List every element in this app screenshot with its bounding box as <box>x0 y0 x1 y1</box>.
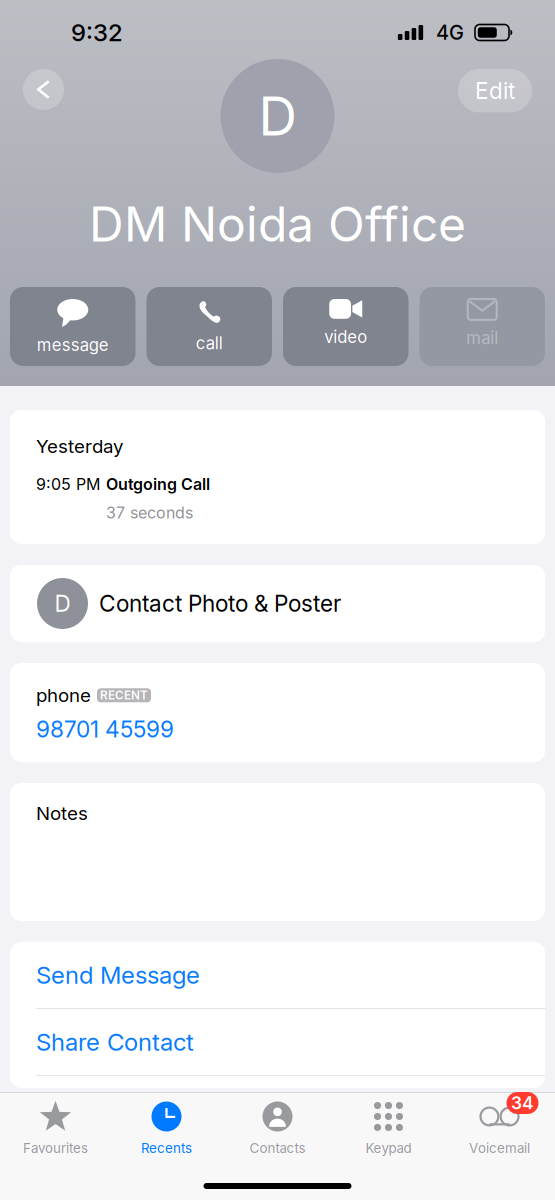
button[interactable]: Keypad <box>333 1101 444 1156</box>
staticText: Outgoing Call <box>106 475 210 494</box>
staticText: Favourites <box>23 1140 88 1156</box>
staticText: message <box>37 335 109 355</box>
button[interactable]: mail <box>419 287 545 366</box>
staticText: Send Message <box>36 960 200 989</box>
staticText: 37 seconds <box>106 503 193 522</box>
button[interactable]: message <box>10 287 135 366</box>
staticText: D <box>54 590 70 617</box>
button[interactable]: call <box>146 287 272 366</box>
button[interactable]: Favourites <box>0 1101 111 1156</box>
button[interactable]: Recents <box>111 1101 222 1156</box>
button[interactable]: Back <box>23 69 64 110</box>
button[interactable]: Send Message <box>10 942 545 1008</box>
button[interactable]: Edit <box>458 69 532 112</box>
staticText: 34 <box>511 1092 534 1113</box>
staticText: video <box>324 327 367 347</box>
staticText: mail <box>466 328 498 348</box>
staticText: DM Noida Office <box>89 195 466 253</box>
staticText: Notes <box>36 802 88 825</box>
button[interactable]: 34 <box>444 1101 555 1156</box>
staticText: 98701 45599 <box>36 716 174 743</box>
staticText: Yesterday <box>36 435 123 458</box>
staticText: 4G <box>436 20 464 45</box>
staticText: D <box>258 84 296 148</box>
staticText: 9:05 PM <box>36 475 100 494</box>
button[interactable]: 98701 45599 <box>36 716 174 743</box>
staticText: Recents <box>141 1140 192 1156</box>
staticText: Share Contact <box>36 1027 194 1056</box>
staticText: RECENT <box>100 688 148 702</box>
button[interactable]: D <box>10 565 545 642</box>
staticText: phone <box>36 684 91 707</box>
staticText: Edit <box>475 77 515 104</box>
staticText: call <box>196 333 223 353</box>
button[interactable]: video <box>283 287 408 366</box>
staticText: Voicemail <box>469 1140 530 1156</box>
staticText: 9:32 <box>71 18 123 47</box>
button[interactable]: Share Contact <box>10 1009 545 1075</box>
staticText: Keypad <box>365 1140 411 1156</box>
button[interactable]: Contacts <box>222 1101 333 1156</box>
staticText: Contact Photo & Poster <box>99 590 341 617</box>
staticText: Contacts <box>249 1140 305 1156</box>
